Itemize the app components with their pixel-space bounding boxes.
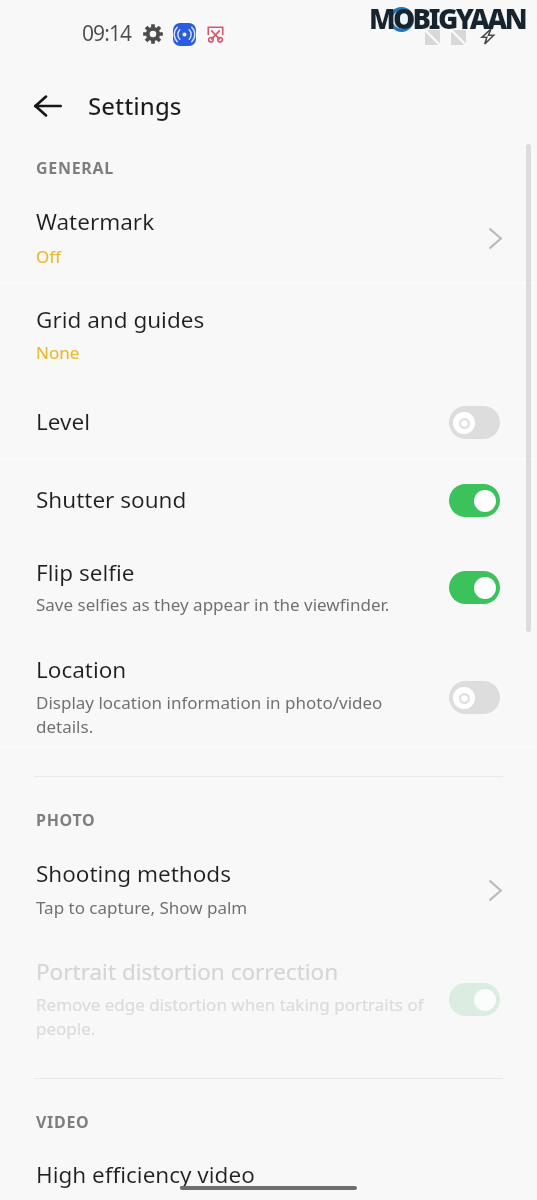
staticText: MOBIGYAAN: [369, 0, 526, 37]
button[interactable]: Switch on: [449, 484, 500, 517]
staticText: Flip selfie: [36, 557, 135, 588]
staticText: Portrait distortion correction: [36, 956, 339, 987]
staticText: Location: [36, 654, 127, 685]
button[interactable]: High efficiency video: [0, 1142, 537, 1200]
button[interactable]: Switch off: [449, 681, 500, 714]
button[interactable]: Flip selfie: [0, 536, 537, 628]
button[interactable]: Watermark: [0, 186, 537, 282]
staticText: Grid and guides: [36, 304, 205, 335]
button[interactable]: Open: [473, 216, 517, 260]
staticText: Off: [36, 245, 61, 268]
button[interactable]: Portrait distortion correction: [0, 940, 537, 1056]
staticText: 09:14: [82, 19, 132, 48]
button[interactable]: Switch off: [449, 406, 500, 439]
staticText: VIDEO: [36, 1111, 90, 1133]
button[interactable]: Switch on: [449, 571, 500, 604]
staticText: Watermark: [36, 206, 155, 237]
staticText: Remove edge distortion when taking portr…: [36, 993, 424, 1040]
staticText: PHOTO: [36, 809, 96, 831]
staticText: None: [36, 341, 80, 364]
button[interactable]: Switch on: [449, 983, 500, 1016]
staticText: Shutter sound: [36, 484, 187, 515]
button[interactable]: Location: [0, 632, 537, 750]
staticText: Save selfies as they appear in the viewf…: [36, 593, 390, 616]
staticText: Level: [36, 406, 90, 437]
staticText: Tap to capture, Show palm: [36, 896, 248, 919]
button[interactable]: Back: [25, 83, 71, 129]
staticText: Display location information in photo/vi…: [36, 691, 383, 738]
staticText: GENERAL: [36, 157, 114, 179]
button[interactable]: Level: [0, 378, 537, 456]
button[interactable]: Open: [473, 868, 517, 912]
staticText: Settings: [88, 89, 182, 122]
button[interactable]: Grid and guides: [0, 284, 537, 376]
button[interactable]: Shooting methods: [0, 840, 537, 932]
staticText: High efficiency video: [36, 1159, 255, 1190]
staticText: Shooting methods: [36, 858, 231, 889]
button[interactable]: Shutter sound: [0, 458, 537, 534]
